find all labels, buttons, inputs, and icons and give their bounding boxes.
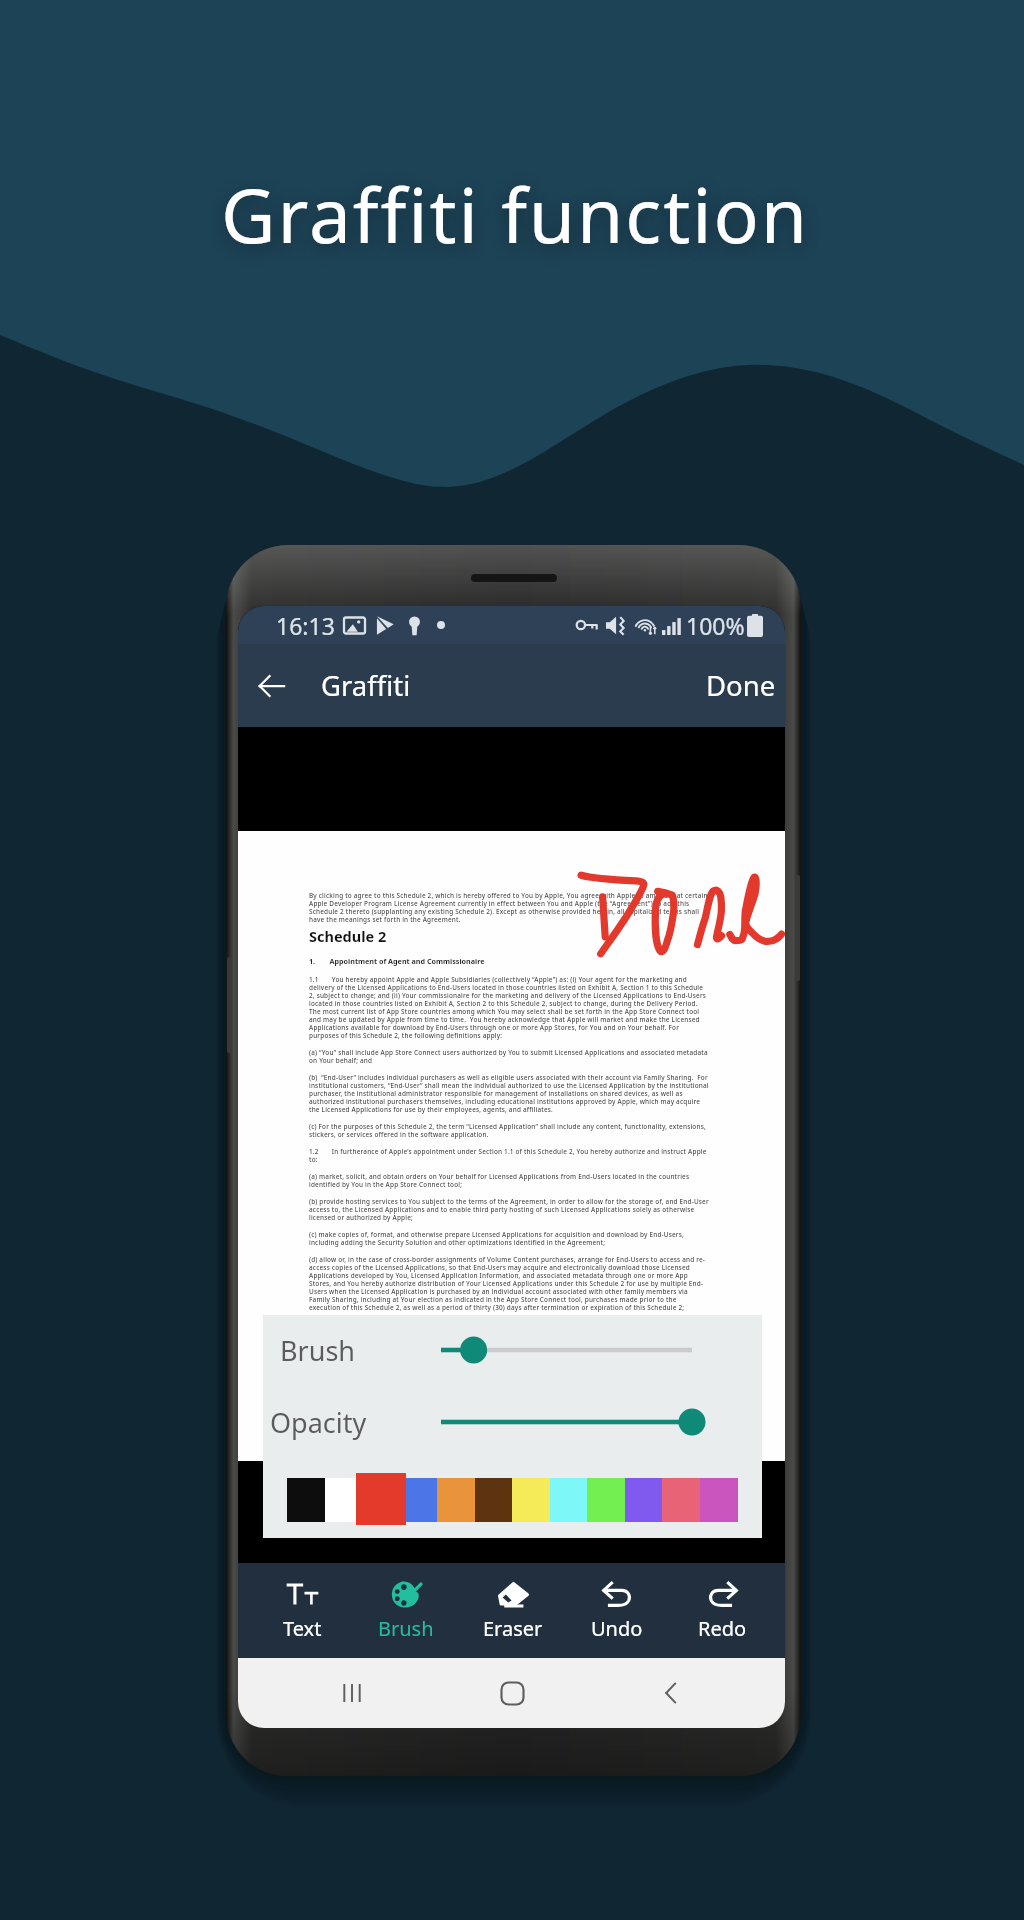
- staticText: (b) provide hosting services to You subj…: [309, 1197, 709, 1222]
- button[interactable]: Eraser: [465, 1563, 561, 1658]
- button[interactable]: Done: [676, 644, 785, 727]
- staticText: Undo: [591, 1615, 643, 1642]
- staticText: (a) market, solicit, and obtain orders o…: [309, 1172, 709, 1189]
- staticText: Done: [706, 667, 776, 704]
- button[interactable]: Back: [238, 644, 306, 727]
- staticText: Brush: [378, 1615, 434, 1642]
- button[interactable]: Opacity: [263, 1398, 762, 1446]
- staticText: Graffiti: [321, 667, 411, 704]
- staticText: Graffiti function: [3, 163, 1024, 265]
- button[interactable]: Brush: [263, 1326, 762, 1374]
- staticText: Eraser: [483, 1615, 543, 1642]
- staticText: Schedule 2: [309, 926, 387, 946]
- button[interactable]: Colour 2: [325, 1478, 363, 1522]
- staticText: Opacity: [270, 1404, 367, 1441]
- staticText: Brush: [280, 1332, 356, 1369]
- staticText: 1.1 You hereby appoint Apple and Apple S…: [309, 975, 709, 1040]
- button[interactable]: Home: [467, 1658, 557, 1728]
- staticText: (c) For the purposes of this Schedule 2,…: [309, 1122, 709, 1139]
- button[interactable]: Colour 8: [550, 1478, 588, 1522]
- staticText: Redo: [698, 1615, 747, 1642]
- button[interactable]: Text: [254, 1563, 350, 1658]
- button[interactable]: Back: [626, 1658, 716, 1728]
- button[interactable]: Recents: [307, 1658, 397, 1728]
- staticText: 100%: [686, 610, 745, 641]
- button[interactable]: Redo: [674, 1563, 770, 1658]
- button[interactable]: Undo: [569, 1563, 665, 1658]
- staticText: 1.2 In furtherance of Apple’s appointmen…: [309, 1147, 709, 1164]
- button[interactable]: Colour 10: [625, 1478, 663, 1522]
- button[interactable]: Brush: [358, 1563, 454, 1658]
- button[interactable]: Colour 6: [475, 1478, 513, 1522]
- button[interactable]: Colour 4: [400, 1478, 438, 1522]
- staticText: (c) make copies of, format, and otherwis…: [309, 1230, 709, 1247]
- staticText: 1. Appointment of Agent and Commissionai…: [309, 956, 485, 966]
- staticText: 16:13: [276, 610, 335, 641]
- staticText: By clicking to agree to this Schedule 2,…: [309, 891, 709, 924]
- staticText: (a) “You” shall include App Store Connec…: [309, 1048, 709, 1065]
- staticText: Text: [283, 1615, 322, 1642]
- staticText: (b) “End-User” includes individual purch…: [309, 1073, 709, 1114]
- staticText: (d) allow or, in the case of cross-borde…: [309, 1255, 709, 1312]
